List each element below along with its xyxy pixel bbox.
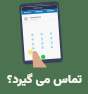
staticText: تماس می گیرد؟ bbox=[7, 71, 82, 90]
